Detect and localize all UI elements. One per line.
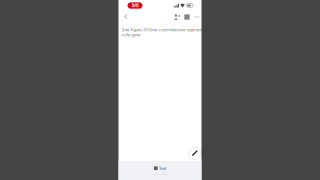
button[interactable]: Edit — [188, 146, 201, 160]
button[interactable]: Back — [120, 11, 131, 22]
button[interactable]: More options — [192, 11, 201, 22]
staticText: Dark Figures Of Crime screen that were e… — [121, 27, 201, 37]
button[interactable]: Print layout — [182, 11, 191, 22]
staticText: Text — [159, 166, 166, 171]
staticText: 9:41 — [131, 3, 138, 8]
button[interactable]: Text — [151, 165, 169, 171]
button[interactable]: Share — [172, 11, 181, 22]
